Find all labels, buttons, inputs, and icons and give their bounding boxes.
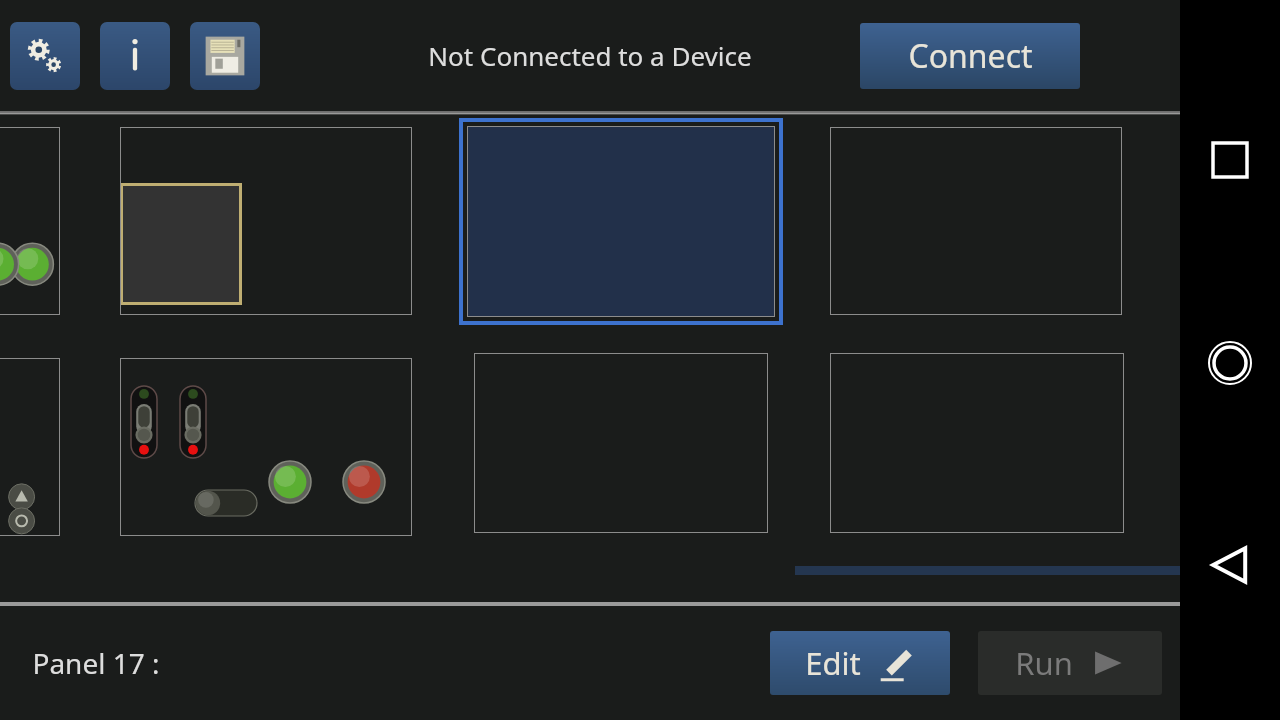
staticText: Connect xyxy=(908,34,1033,78)
button[interactable]: Settings xyxy=(10,22,80,90)
staticText: Run xyxy=(1015,642,1073,684)
staticText: Panel 17 : xyxy=(32,644,160,682)
button[interactable]: Home xyxy=(1198,331,1262,395)
staticText: Edit xyxy=(805,642,861,684)
button[interactable] xyxy=(120,127,412,315)
button[interactable] xyxy=(459,118,783,325)
button[interactable]: Connect xyxy=(860,23,1080,89)
button[interactable]: Save xyxy=(190,22,260,90)
button[interactable]: Info xyxy=(100,22,170,90)
button[interactable] xyxy=(120,358,412,536)
button[interactable] xyxy=(830,353,1124,533)
staticText: Not Connected to a Device xyxy=(428,38,752,73)
button[interactable] xyxy=(830,127,1122,315)
button[interactable]: Edit xyxy=(770,631,950,695)
button[interactable]: Back xyxy=(1198,533,1262,597)
button[interactable] xyxy=(474,353,768,533)
button[interactable]: Run xyxy=(978,631,1162,695)
button[interactable]: Recents xyxy=(1201,131,1259,189)
button[interactable] xyxy=(0,358,60,536)
button[interactable] xyxy=(0,127,60,315)
